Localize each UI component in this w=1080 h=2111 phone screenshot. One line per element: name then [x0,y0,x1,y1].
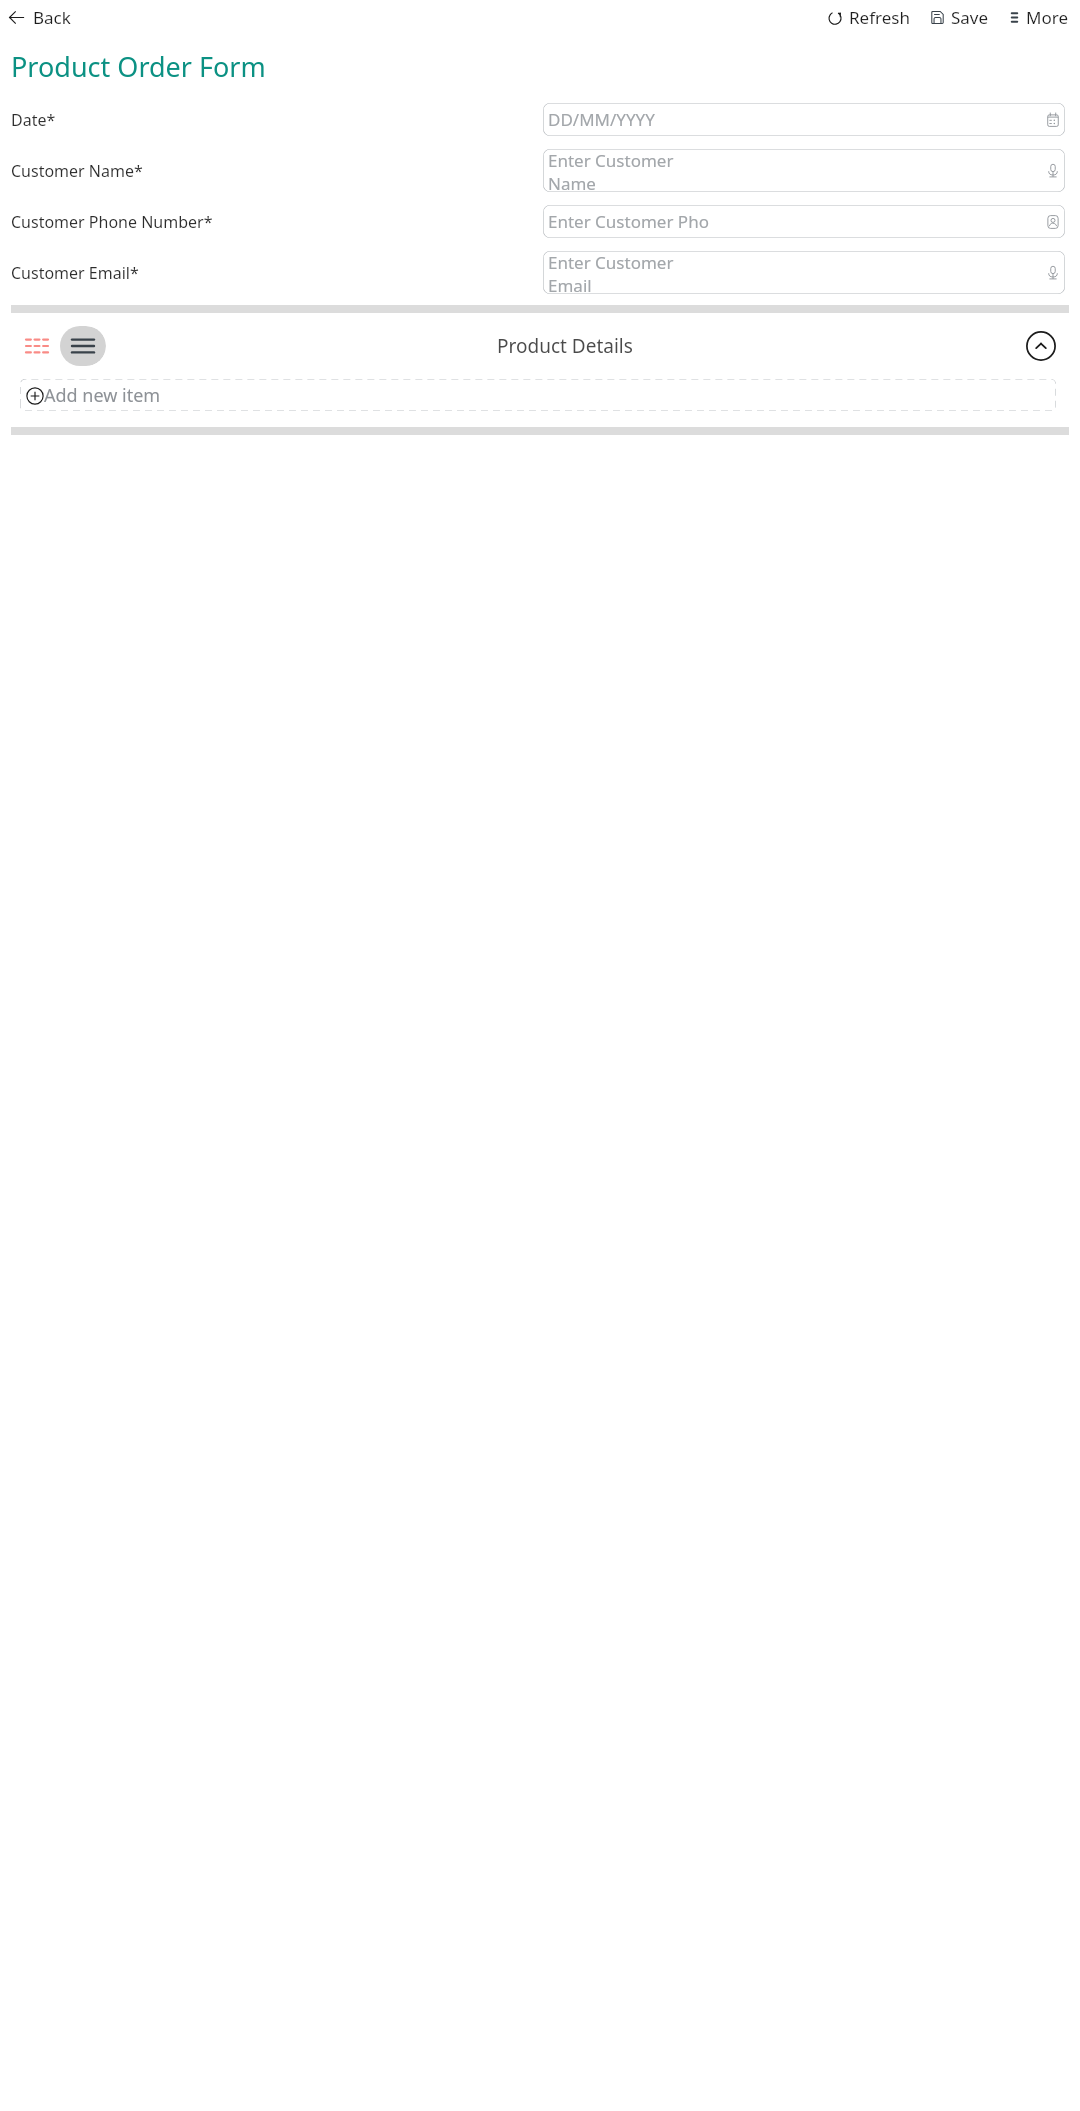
button[interactable]: Refresh [826,3,912,32]
staticText: Product Details [497,333,633,359]
staticText: Back [33,6,71,29]
staticText: Enter Customer Email [548,251,674,294]
staticText: Customer Phone Number* [11,211,213,233]
button[interactable]: Enter Customer Email [543,251,1065,294]
button[interactable]: More [1006,3,1070,32]
button[interactable]: Enter Customer Name [543,149,1065,192]
button[interactable]: Save [928,3,991,32]
staticText: Add new item [44,383,161,408]
staticText: Enter Customer Name [548,149,674,192]
staticText: Refresh [849,6,910,29]
button[interactable]: Enter Customer Pho [543,205,1065,238]
button[interactable]: Add new item [20,379,1056,411]
staticText: Date* [11,109,56,131]
button[interactable]: Back [7,3,73,32]
staticText: Enter Customer Pho [548,210,709,233]
button[interactable]: DD/MM/YYYY [543,103,1065,136]
staticText: Save [951,6,989,29]
staticText: More [1026,6,1068,29]
staticText: Customer Name* [11,160,143,182]
staticText: DD/MM/YYYY [548,108,655,131]
button[interactable]: Grid view [14,326,106,366]
other: List view [72,338,94,354]
button[interactable]: Collapse [1024,329,1058,363]
staticText: Customer Email* [11,262,139,284]
staticText: Product Order Form [11,48,266,85]
other: Grid view [26,338,48,354]
